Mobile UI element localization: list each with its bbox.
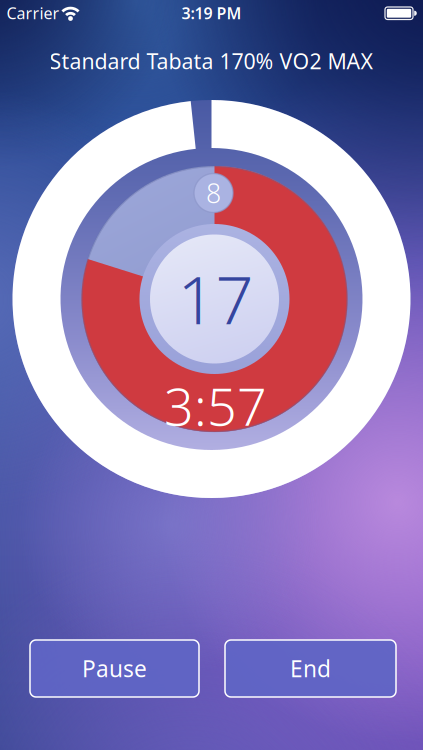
staticText: Standard Tabata 170% VO2 MAX — [49, 47, 373, 75]
staticText: Carrier — [6, 2, 59, 24]
staticText: 8 — [206, 175, 221, 211]
staticText: 17 — [177, 254, 253, 343]
staticText: End — [290, 653, 331, 683]
staticText: 3:19 PM — [181, 2, 241, 24]
button[interactable]: Pause — [30, 640, 199, 697]
staticText: Pause — [82, 653, 147, 683]
staticText: 3:57 — [164, 371, 267, 440]
button[interactable]: End — [225, 640, 396, 697]
